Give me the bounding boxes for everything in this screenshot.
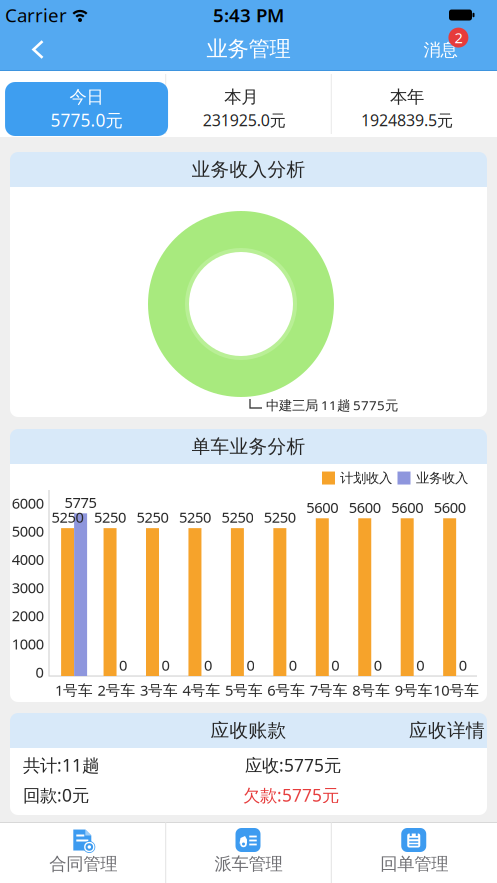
staticText: 5600 bbox=[434, 497, 466, 517]
staticText: 5775 bbox=[65, 493, 97, 512]
staticText: 0 bbox=[246, 655, 254, 675]
staticText: 今日 bbox=[70, 86, 104, 108]
staticText: 消息 bbox=[423, 39, 457, 61]
button[interactable]: 今日 bbox=[0, 71, 166, 137]
staticText: 5775.0元 bbox=[51, 108, 123, 131]
staticText: 1000 bbox=[12, 634, 44, 654]
staticText: 231925.0元 bbox=[203, 109, 286, 131]
staticText: 合同管理 bbox=[49, 853, 117, 875]
staticText: 6000 bbox=[12, 493, 44, 513]
staticText: 应收:5775元 bbox=[245, 753, 341, 776]
staticText: 5250 bbox=[52, 507, 84, 527]
staticText: 5000 bbox=[12, 521, 44, 541]
staticText: 回款:0元 bbox=[23, 783, 89, 806]
staticText: 0 bbox=[204, 655, 212, 675]
button[interactable]: 合同管理 bbox=[0, 822, 165, 883]
staticText: 欠款:5775元 bbox=[243, 783, 339, 806]
button[interactable]: 回单管理 bbox=[331, 822, 497, 883]
staticText: 0 bbox=[161, 655, 169, 675]
staticText: 本年 bbox=[390, 86, 424, 108]
staticText: 5250 bbox=[221, 507, 253, 527]
staticText: 计划收入 bbox=[340, 470, 392, 486]
staticText: 派车管理 bbox=[214, 853, 282, 875]
button[interactable]: Back bbox=[16, 28, 60, 71]
staticText: 5600 bbox=[349, 497, 381, 517]
staticText: 0 bbox=[331, 655, 339, 675]
staticText: 中建三局 11趟 5775元 bbox=[266, 396, 398, 414]
staticText: 本月 bbox=[224, 86, 258, 108]
staticText: 5:43 PM bbox=[213, 3, 284, 27]
staticText: 5600 bbox=[391, 497, 423, 517]
staticText: 2 bbox=[454, 28, 462, 47]
button[interactable]: 消息 bbox=[406, 28, 476, 71]
staticText: 单车业务分析 bbox=[191, 435, 305, 458]
staticText: 5250 bbox=[264, 507, 296, 527]
staticText: 4号车 bbox=[182, 680, 220, 700]
staticText: 5250 bbox=[179, 507, 211, 527]
staticText: 2000 bbox=[12, 606, 44, 625]
button[interactable]: 本年 bbox=[331, 71, 496, 137]
staticText: 8号车 bbox=[352, 680, 390, 700]
button[interactable]: 本月 bbox=[166, 71, 331, 137]
staticText: 4000 bbox=[12, 550, 44, 569]
staticText: 应收详情 bbox=[409, 719, 485, 742]
button[interactable]: 派车管理 bbox=[166, 822, 331, 883]
button[interactable]: 应收详情 bbox=[397, 713, 497, 748]
staticText: 业务收入分析 bbox=[191, 158, 305, 181]
staticText: 3000 bbox=[12, 578, 44, 597]
staticText: 0 bbox=[459, 655, 467, 675]
staticText: 2号车 bbox=[98, 680, 136, 700]
staticText: 3号车 bbox=[140, 680, 178, 700]
staticText: 5250 bbox=[94, 507, 126, 527]
staticText: Carrier bbox=[5, 3, 67, 27]
staticText: 7号车 bbox=[310, 680, 348, 700]
staticText: 5600 bbox=[306, 497, 338, 517]
staticText: 业务管理 bbox=[206, 36, 290, 62]
staticText: 0 bbox=[289, 655, 297, 675]
staticText: 业务收入 bbox=[416, 470, 468, 486]
staticText: 1924839.5元 bbox=[361, 109, 453, 131]
staticText: 9号车 bbox=[395, 680, 433, 700]
staticText: 0 bbox=[416, 655, 424, 675]
staticText: 0 bbox=[119, 655, 127, 675]
staticText: 1号车 bbox=[55, 680, 93, 700]
staticText: 共计:11趟 bbox=[23, 753, 99, 776]
staticText: 0 bbox=[35, 662, 43, 682]
staticText: 0 bbox=[374, 655, 382, 675]
staticText: 回单管理 bbox=[380, 853, 448, 875]
staticText: 应收账款 bbox=[210, 719, 286, 742]
staticText: 5号车 bbox=[225, 680, 263, 700]
staticText: 6号车 bbox=[267, 680, 305, 700]
staticText: 5250 bbox=[136, 507, 168, 527]
staticText: 10号车 bbox=[433, 680, 479, 700]
